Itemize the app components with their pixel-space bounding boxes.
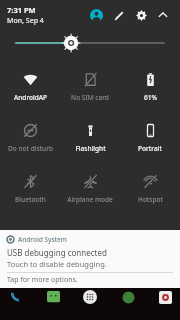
staticText: Mon, Sep 4 — [7, 16, 44, 26]
button[interactable]: Airplane mode — [60, 162, 120, 213]
staticText: USB debugging connected — [7, 247, 107, 258]
button[interactable]: Do not disturb — [0, 111, 60, 162]
button[interactable]: Collapse — [152, 4, 174, 26]
button[interactable]: Camera — [119, 288, 137, 306]
button[interactable]: AndroidAP — [0, 60, 60, 111]
staticText: 61% — [144, 93, 157, 102]
staticText: Hotspot — [138, 195, 163, 204]
button[interactable]: Messages — [44, 288, 62, 306]
button[interactable]: Brightness — [0, 30, 180, 56]
staticText: Flashlight — [75, 144, 106, 153]
button[interactable]: Flashlight — [60, 111, 120, 162]
staticText: Airplane mode — [67, 195, 113, 204]
staticText: Touch to disable debugging. — [7, 259, 107, 269]
button[interactable]: No SIM card — [60, 60, 120, 111]
staticText: Tap for more options. — [7, 275, 78, 285]
button[interactable]: Bluetooth — [0, 162, 60, 213]
button[interactable]: Recorder — [156, 288, 174, 306]
button[interactable]: 61% — [120, 60, 180, 111]
button[interactable]: Portrait — [120, 111, 180, 162]
button[interactable]: Hotspot — [120, 162, 180, 213]
staticText: Android System — [18, 235, 67, 244]
button[interactable]: Edit tiles — [108, 4, 130, 26]
staticText: 7:31 PM — [7, 5, 36, 15]
staticText: AndroidAP — [14, 93, 47, 102]
button[interactable]: Phone — [6, 288, 24, 306]
button[interactable]: All apps — [81, 288, 99, 306]
staticText: No SIM card — [71, 93, 109, 102]
button[interactable]: User profile — [84, 3, 108, 27]
button[interactable]: Android System — [0, 230, 180, 288]
staticText: Do not disturb — [8, 144, 53, 153]
button[interactable]: Settings — [130, 4, 152, 26]
staticText: Portrait — [138, 144, 162, 153]
staticText: Bluetooth — [15, 195, 46, 204]
